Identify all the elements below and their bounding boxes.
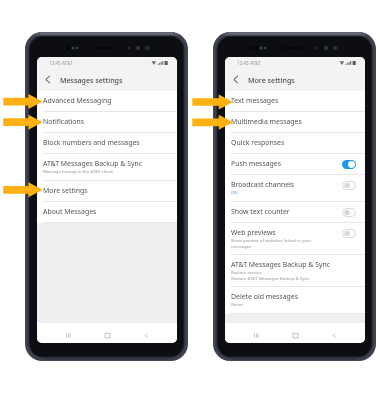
button[interactable]: Recents <box>236 329 276 342</box>
button[interactable]: Toggle on <box>342 160 356 169</box>
staticText: Notifications <box>43 117 84 126</box>
staticText: Off <box>231 189 238 195</box>
button[interactable]: Web previews <box>225 223 365 255</box>
staticText: Quick responses <box>231 138 285 147</box>
staticText: 12:45 AT&T <box>49 60 73 66</box>
staticText: Text messages <box>231 96 279 105</box>
staticText: Messages settings <box>60 75 123 85</box>
staticText: Block numbers and messages <box>43 138 140 147</box>
button[interactable]: Broadcast channels <box>225 175 365 202</box>
staticText: Restore service <box>231 269 262 275</box>
staticText: messages <box>231 243 252 249</box>
button[interactable]: Back <box>315 329 354 342</box>
button[interactable]: Notifications <box>37 112 177 133</box>
button[interactable]: Recents <box>48 329 88 342</box>
staticText: More settings <box>43 186 88 195</box>
button[interactable]: Show text counter <box>225 202 365 223</box>
button[interactable]: About Messages <box>37 202 177 223</box>
button[interactable]: Toggle off <box>342 181 356 190</box>
staticText: Web previews <box>231 228 276 237</box>
staticText: Show preview of websites linked in your <box>231 237 312 243</box>
button[interactable]: Advanced Messaging <box>37 91 177 112</box>
button[interactable]: Back <box>37 68 59 91</box>
button[interactable]: Block numbers and messages <box>37 133 177 154</box>
button[interactable]: Text messages <box>225 91 365 112</box>
button[interactable]: Home <box>88 329 127 342</box>
button[interactable]: Back <box>225 68 247 91</box>
staticText: 12:45 AT&T <box>237 60 261 66</box>
button[interactable]: Toggle off <box>342 229 356 238</box>
staticText: More settings <box>248 75 295 85</box>
button[interactable]: AT&T Messages Backup & Sync <box>37 154 177 181</box>
button[interactable]: Quick responses <box>225 133 365 154</box>
button[interactable]: Home <box>276 329 315 342</box>
staticText: AT&T Messages Backup & Sync <box>43 159 143 168</box>
staticText: Message backup in the AT&T cloud <box>43 168 113 174</box>
button[interactable]: Push messages <box>225 154 365 175</box>
button[interactable]: More settings <box>37 181 177 202</box>
button[interactable]: Toggle off <box>342 208 356 217</box>
staticText: Delete old messages <box>231 292 298 301</box>
button[interactable]: AT&T Messages Backup & Sync <box>225 255 365 287</box>
staticText: Push messages <box>231 159 281 168</box>
staticText: Restore AT&T Messages Backup & Sync <box>231 275 310 281</box>
staticText: Advanced Messaging <box>43 96 112 105</box>
staticText: AT&T Messages Backup & Sync <box>231 260 331 269</box>
button[interactable]: Delete old messages <box>225 287 365 314</box>
staticText: Multimedia messages <box>231 117 302 126</box>
button[interactable]: Back <box>127 329 166 342</box>
staticText: Show text counter <box>231 207 290 216</box>
button[interactable]: Multimedia messages <box>225 112 365 133</box>
staticText: About Messages <box>43 207 97 216</box>
staticText: Never <box>231 301 243 307</box>
staticText: Broadcast channels <box>231 180 295 189</box>
